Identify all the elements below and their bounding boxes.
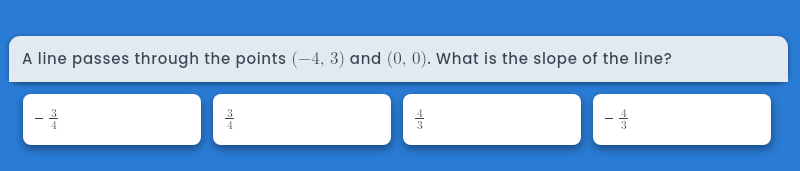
button[interactable]: 3 (23, 94, 201, 145)
staticText: 3 (51, 104, 57, 120)
staticText: A line passes through the points (−4, 3)… (22, 45, 673, 69)
staticText: 4 (227, 116, 233, 132)
button[interactable]: A line passes through the points (−4, 3)… (9, 36, 788, 82)
button[interactable]: 4 (403, 94, 581, 145)
button[interactable]: 4 (593, 94, 771, 145)
staticText: 4 (51, 116, 57, 132)
staticText: 3 (621, 116, 627, 132)
staticText: 4 (417, 104, 423, 120)
staticText: 3 (227, 104, 233, 120)
staticText: 3 (417, 116, 423, 132)
staticText: 4 (621, 104, 627, 120)
button[interactable]: 3 (213, 94, 391, 145)
